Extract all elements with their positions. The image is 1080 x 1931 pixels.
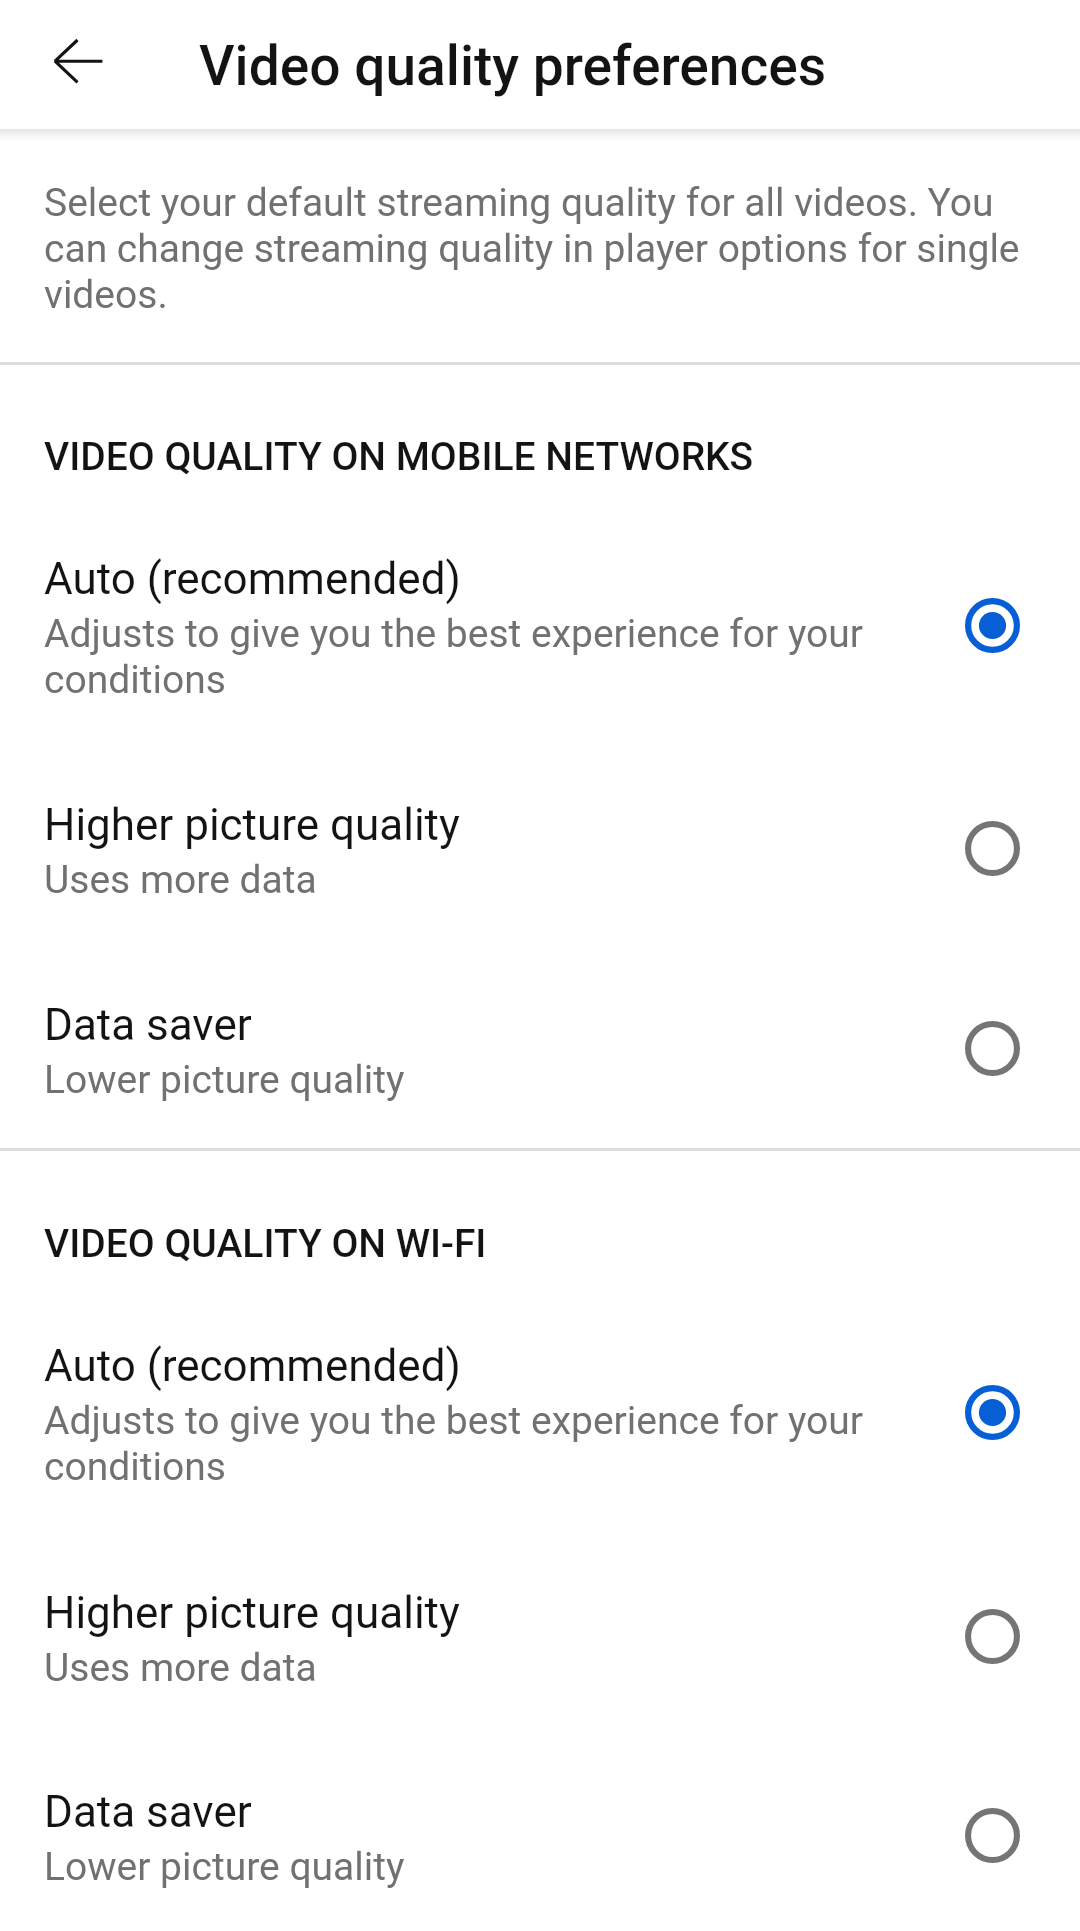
button[interactable]: Higher picture quality: [0, 1574, 1080, 1705]
other: Data saver: [965, 1021, 1020, 1076]
button[interactable]: Higher picture quality: [0, 786, 1080, 917]
staticText: Select your default streaming quality fo…: [44, 180, 1061, 318]
other: Data saver: [965, 1808, 1020, 1863]
staticText: VIDEO QUALITY ON WI-FI: [44, 1221, 1060, 1267]
button[interactable]: Auto (recommended): [0, 1327, 1080, 1504]
staticText: Data saver: [44, 1786, 924, 1838]
other: Higher picture quality: [965, 821, 1020, 876]
staticText: Video quality preferences: [199, 34, 827, 98]
staticText: Higher picture quality: [44, 1587, 924, 1639]
staticText: Data saver: [44, 999, 924, 1051]
button[interactable]: Data saver: [0, 986, 1080, 1117]
button[interactable]: Auto (recommended): [0, 540, 1080, 717]
staticText: VIDEO QUALITY ON MOBILE NETWORKS: [44, 434, 1060, 480]
staticText: Auto (recommended): [44, 553, 924, 605]
staticText: Uses more data: [44, 1645, 924, 1691]
other: Higher picture quality: [965, 1609, 1020, 1664]
staticText: Lower picture quality: [44, 1844, 924, 1890]
button[interactable]: Navigate up: [14, 3, 138, 127]
other: Auto (recommended): [965, 1385, 1020, 1440]
other: Auto (recommended): [965, 598, 1020, 653]
staticText: Uses more data: [44, 857, 924, 903]
staticText: Adjusts to give you the best experience …: [44, 611, 924, 703]
staticText: Adjusts to give you the best experience …: [44, 1398, 924, 1490]
staticText: Higher picture quality: [44, 799, 924, 851]
staticText: Auto (recommended): [44, 1340, 924, 1392]
staticText: Lower picture quality: [44, 1057, 924, 1103]
button[interactable]: Data saver: [0, 1773, 1080, 1904]
